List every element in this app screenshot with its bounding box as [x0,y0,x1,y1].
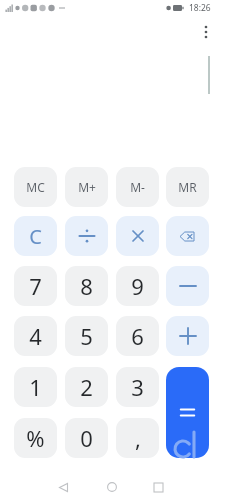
staticText: MC [26,179,45,195]
button[interactable]: 3 [116,367,159,407]
staticText: 6 [131,321,144,351]
staticText: 8 [80,271,93,301]
staticText: 9 [131,271,144,301]
staticText: 3 [131,372,144,402]
button[interactable]: Equals [166,367,209,458]
staticText: 1 [29,372,42,402]
button[interactable]: Plus [166,316,209,356]
button[interactable]: 6 [116,316,159,356]
button[interactable]: Back [53,477,73,497]
staticText: 2 [80,372,93,402]
button[interactable]: 7 [14,266,57,306]
button[interactable]: C [14,216,57,256]
button[interactable]: 0 [65,418,108,458]
button[interactable]: Backspace [166,216,209,256]
staticText: % [26,423,45,453]
staticText: 5 [80,321,93,351]
button[interactable]: 9 [116,266,159,306]
staticText: 4 [29,321,42,351]
button[interactable]: % [14,418,57,458]
staticText: M- [130,179,145,195]
staticText: , [135,423,141,453]
button[interactable]: More options [194,15,218,39]
staticText: C [29,223,42,250]
staticText: M+ [78,179,96,195]
button[interactable]: M+ [65,167,108,207]
staticText: 0 [80,423,93,453]
button[interactable]: 8 [65,266,108,306]
staticText: 7 [29,271,42,301]
button[interactable]: 5 [65,316,108,356]
staticText: MR [178,179,197,195]
button[interactable]: M- [116,167,159,207]
button[interactable]: Divide [65,216,108,256]
button[interactable]: , [116,418,159,458]
button[interactable]: Home [102,477,122,497]
button[interactable]: Multiply [116,216,159,256]
button[interactable]: Recent apps [148,477,168,497]
button[interactable]: 2 [65,367,108,407]
button[interactable]: MR [166,167,209,207]
button[interactable]: 1 [14,367,57,407]
staticText: 18:26 [189,2,211,14]
button[interactable]: Minus [166,266,209,306]
button[interactable]: 4 [14,316,57,356]
button[interactable]: MC [14,167,57,207]
